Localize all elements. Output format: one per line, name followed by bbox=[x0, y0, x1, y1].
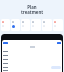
button[interactable] bbox=[11, 19, 20, 31]
button[interactable] bbox=[3, 49, 61, 53]
button[interactable] bbox=[21, 19, 30, 31]
button[interactable] bbox=[3, 61, 61, 65]
button[interactable] bbox=[3, 65, 61, 69]
button[interactable] bbox=[31, 19, 41, 31]
button[interactable]: Back bbox=[3, 42, 8, 44]
button[interactable] bbox=[3, 69, 61, 72]
staticText: Plan treatment bbox=[0, 4, 64, 15]
button[interactable] bbox=[42, 19, 52, 31]
button[interactable] bbox=[3, 53, 61, 57]
button[interactable] bbox=[1, 19, 10, 31]
button[interactable] bbox=[53, 19, 63, 31]
button[interactable]: Save bbox=[57, 42, 61, 44]
button[interactable] bbox=[3, 57, 61, 61]
